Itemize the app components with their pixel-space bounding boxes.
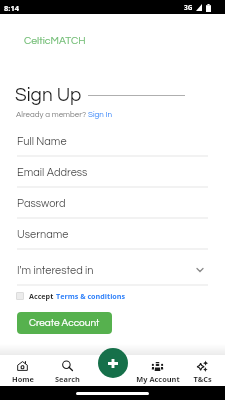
button[interactable]: Search xyxy=(45,355,90,384)
button[interactable]: Accept xyxy=(16,291,126,301)
staticText: 8:14 xyxy=(4,3,20,13)
button[interactable]: I'm interested in xyxy=(0,255,225,285)
staticText: Email Address xyxy=(17,167,88,178)
staticText: Already a member? xyxy=(16,110,88,118)
staticText: Password xyxy=(17,198,66,209)
staticText: T&Cs xyxy=(193,374,212,384)
staticText: 3G xyxy=(184,3,193,12)
button[interactable]: T&Cs xyxy=(180,355,225,384)
button[interactable]: Password xyxy=(0,188,225,218)
staticText: Terms & conditions xyxy=(56,291,126,301)
button[interactable]: Email Address xyxy=(0,157,225,187)
staticText: Create Account xyxy=(29,318,100,328)
staticText: Sign Up xyxy=(15,85,82,105)
staticText: Accept xyxy=(29,291,56,301)
staticText: Username xyxy=(17,229,69,240)
button[interactable]: Full Name xyxy=(0,126,225,156)
staticText: My Account xyxy=(136,374,180,384)
staticText: CelticMATCH xyxy=(24,35,86,46)
staticText: I'm interested in xyxy=(17,265,94,276)
staticText: Full Name xyxy=(17,136,67,147)
button[interactable]: Add xyxy=(98,348,128,378)
button[interactable]: My Account xyxy=(135,355,180,384)
staticText: Home xyxy=(12,374,34,384)
button[interactable]: Create Account xyxy=(17,312,112,334)
button[interactable]: Home xyxy=(0,355,45,384)
button[interactable]: Username xyxy=(0,219,225,249)
button[interactable]: Sign In xyxy=(88,110,112,118)
staticText: Search xyxy=(55,374,80,384)
